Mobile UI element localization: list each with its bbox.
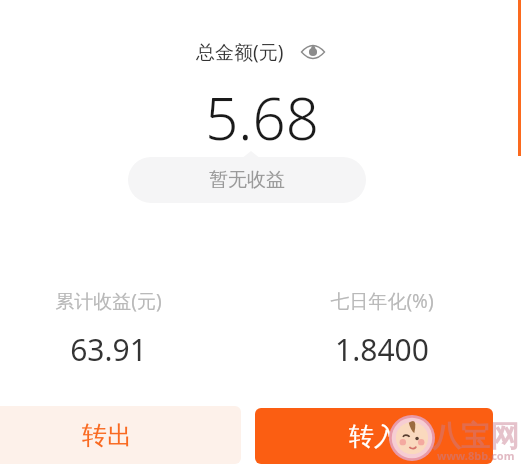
staticText: 八宝网 [432, 418, 519, 455]
staticText: 转入 [349, 421, 399, 452]
staticText: 七日年化(%) [330, 288, 434, 314]
staticText: 1.8400 [335, 329, 429, 370]
button[interactable]: 七日年化(%) [267, 288, 497, 370]
staticText: 63.91 [70, 329, 147, 370]
staticText: 5.68 [205, 78, 319, 157]
button[interactable]: 暂无收益 [128, 157, 366, 203]
staticText: 暂无收益 [209, 168, 285, 192]
staticText: www.8bb.com [437, 448, 515, 463]
staticText: 转出 [82, 420, 132, 451]
staticText: 累计收益(元) [55, 288, 162, 314]
button[interactable]: 累计收益(元) [0, 288, 223, 370]
button[interactable]: 转入 [255, 408, 493, 464]
staticText: 总金额(元) [196, 39, 284, 65]
button[interactable]: 隐藏金额 [300, 39, 326, 65]
button[interactable]: 转出 [0, 406, 241, 464]
